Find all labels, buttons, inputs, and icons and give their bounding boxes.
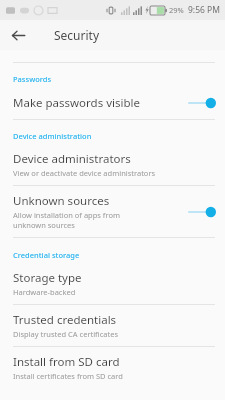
staticText: Credential storage xyxy=(13,250,80,260)
staticText: 29% xyxy=(169,5,184,15)
button[interactable]: Make passwords visible xyxy=(0,87,225,119)
staticText: Storage type xyxy=(13,270,82,286)
staticText: Device administrators xyxy=(13,151,131,167)
button[interactable]: Toggle Unknown sources xyxy=(187,203,217,221)
button[interactable]: Trusted credentials xyxy=(0,305,225,346)
button[interactable]: Back xyxy=(6,23,30,47)
staticText: Allow installation of apps from unknown … xyxy=(13,210,120,230)
staticText: Install certificates from SD card xyxy=(13,371,123,381)
button[interactable]: Toggle Make passwords visible xyxy=(187,94,217,112)
button[interactable]: Storage type xyxy=(0,263,225,304)
staticText: 9:56 PM xyxy=(188,4,220,16)
staticText: Device administration xyxy=(13,131,92,141)
staticText: Security xyxy=(54,27,100,43)
button[interactable]: Unknown sources xyxy=(0,186,225,237)
staticText: Passwords xyxy=(13,74,52,84)
staticText: Trusted credentials xyxy=(13,312,117,328)
staticText: Install from SD card xyxy=(13,354,120,370)
staticText: Unknown sources xyxy=(13,193,110,209)
staticText: Hardware-backed xyxy=(13,287,76,297)
button[interactable]: Install from SD card xyxy=(0,347,225,388)
staticText: Display trusted CA certificates xyxy=(13,329,118,339)
staticText: Make passwords visible xyxy=(13,95,140,111)
button[interactable]: Device administrators xyxy=(0,144,225,185)
staticText: View or deactivate device administrators xyxy=(13,168,156,178)
